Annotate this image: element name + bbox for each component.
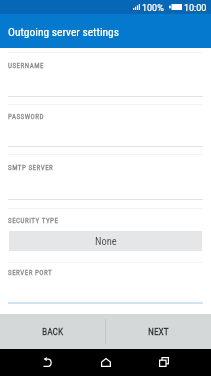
staticText: USERNAME	[8, 62, 44, 70]
button[interactable]: None	[9, 231, 202, 251]
staticText: SMTP SERVER	[8, 164, 54, 172]
staticText: SECURITY TYPE	[8, 217, 59, 225]
staticText: None	[95, 235, 117, 247]
staticText: NEXT	[148, 326, 169, 337]
staticText: 100%	[142, 3, 164, 14]
staticText: BACK	[42, 326, 64, 337]
button[interactable]: Back	[27, 350, 67, 374]
button[interactable]: NEXT	[106, 314, 211, 349]
staticText: 10:00	[184, 3, 207, 14]
button[interactable]: Recent apps	[144, 350, 184, 374]
staticText: PASSWORD	[8, 113, 44, 121]
staticText: Outgoing server settings	[8, 25, 120, 38]
staticText: SERVER PORT	[8, 269, 53, 277]
button[interactable]: BACK	[0, 314, 105, 349]
button[interactable]: Home	[86, 350, 126, 374]
